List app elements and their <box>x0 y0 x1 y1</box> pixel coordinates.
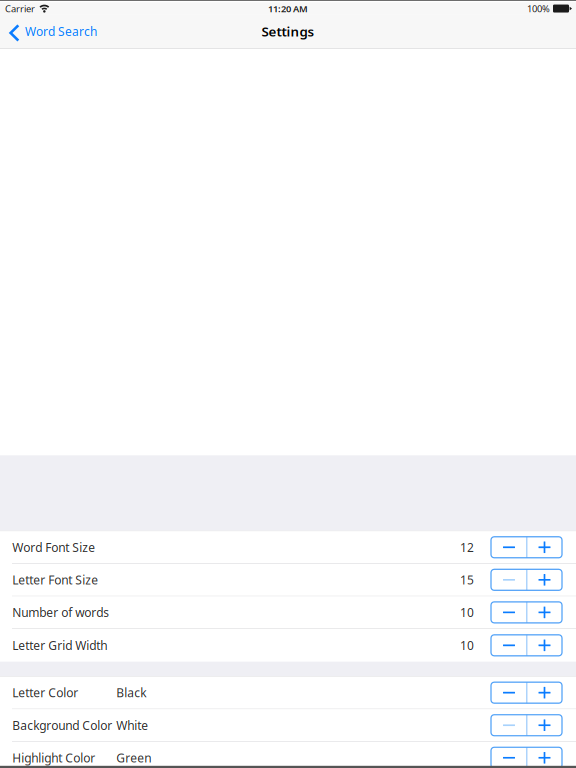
button[interactable]: Highlight Color <box>0 742 576 768</box>
button[interactable]: Letter Color <box>0 677 576 709</box>
button[interactable]: Background Color <box>0 709 576 742</box>
button[interactable]: Decrease <box>491 569 526 590</box>
button[interactable]: Decrease <box>491 747 526 768</box>
staticText: Green <box>116 750 151 766</box>
staticText: Black <box>116 685 146 701</box>
staticText: Word Search <box>25 23 97 39</box>
button[interactable]: Word Font Size <box>0 531 576 564</box>
button[interactable]: Increase <box>527 747 561 768</box>
staticText: White <box>116 717 148 733</box>
staticText: 12 <box>460 539 474 555</box>
staticText: Letter Color <box>12 685 78 701</box>
staticText: 100% <box>527 2 550 15</box>
staticText: Carrier <box>5 2 35 15</box>
staticText: Background Color <box>12 717 112 733</box>
button[interactable]: Increase <box>527 715 561 736</box>
staticText: Highlight Color <box>12 750 95 766</box>
button[interactable]: Decrease <box>491 715 526 736</box>
staticText: Settings <box>261 23 314 40</box>
staticText: Number of words <box>12 604 109 620</box>
staticText: Letter Grid Width <box>12 637 107 653</box>
button[interactable]: Increase <box>527 602 561 623</box>
staticText: 10 <box>460 637 474 653</box>
button[interactable]: Decrease <box>491 602 526 623</box>
button[interactable]: Letter Grid Width <box>0 629 576 661</box>
button[interactable]: Increase <box>527 537 561 558</box>
button[interactable]: Decrease <box>491 537 526 558</box>
button[interactable]: Decrease <box>491 682 526 703</box>
staticText: 10 <box>460 604 474 620</box>
staticText: Letter Font Size <box>12 572 98 588</box>
staticText: 11:20 AM <box>268 2 308 15</box>
staticText: 15 <box>460 572 474 588</box>
button[interactable]: Increase <box>527 569 561 590</box>
button[interactable]: Word Search <box>0 15 107 48</box>
button[interactable]: Letter Font Size <box>0 564 576 596</box>
button[interactable]: Decrease <box>491 635 526 656</box>
button[interactable]: Increase <box>527 635 561 656</box>
button[interactable]: Number of words <box>0 596 576 629</box>
staticText: Word Font Size <box>12 539 95 555</box>
button[interactable]: Increase <box>527 682 561 703</box>
